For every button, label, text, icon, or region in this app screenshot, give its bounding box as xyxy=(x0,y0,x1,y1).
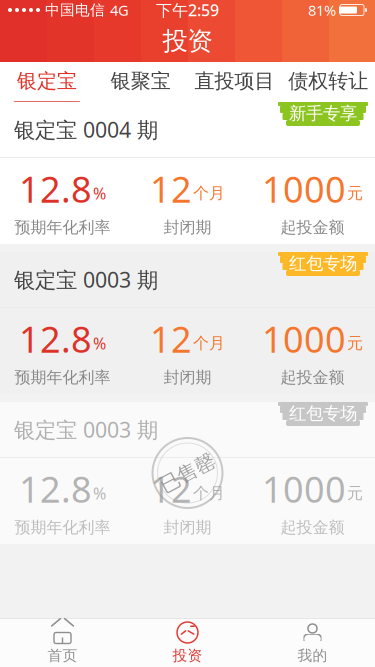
staticText: 预期年化利率 xyxy=(14,518,110,537)
staticText: 银定宝 0004 期 xyxy=(14,115,158,144)
staticText: 元 xyxy=(347,333,363,353)
staticText: 元 xyxy=(347,483,363,503)
staticText: 81% xyxy=(308,0,336,20)
staticText: % xyxy=(93,482,106,504)
staticText: 元 xyxy=(347,183,363,203)
button[interactable]: 债权转让 xyxy=(281,62,375,102)
staticText: 个月 xyxy=(193,183,225,203)
staticText: % xyxy=(93,182,106,204)
button[interactable]: 银定宝 xyxy=(0,62,94,102)
staticText: 新手专享 xyxy=(289,103,357,124)
staticText: % xyxy=(93,332,106,354)
staticText: 个月 xyxy=(193,333,225,353)
staticText: 12 xyxy=(150,465,192,513)
staticText: 12.8 xyxy=(19,465,92,513)
staticText: 封闭期 xyxy=(163,368,211,387)
button[interactable]: 直投项目 xyxy=(187,62,281,102)
staticText: 个月 xyxy=(193,483,225,503)
staticText: 起投金额 xyxy=(280,518,344,537)
staticText: 直投项目 xyxy=(194,69,274,93)
staticText: 银聚宝 xyxy=(111,69,171,93)
staticText: 1000 xyxy=(262,165,346,213)
staticText: 红包专场 xyxy=(289,253,357,274)
staticText: 预期年化利率 xyxy=(14,368,110,387)
staticText: 红包专场 xyxy=(289,403,357,424)
button[interactable]: 银定宝 0003 期 xyxy=(0,252,375,394)
staticText: 1000 xyxy=(262,315,346,363)
staticText: 投资 xyxy=(172,646,202,664)
staticText: 起投金额 xyxy=(280,368,344,387)
staticText: 12 xyxy=(150,165,192,213)
staticText: 12.8 xyxy=(19,165,92,213)
staticText: 已售罄 xyxy=(157,461,217,485)
staticText: 银定宝 0003 期 xyxy=(14,415,158,444)
staticText: 债权转让 xyxy=(288,69,368,93)
staticText: 4G xyxy=(110,0,129,20)
staticText: 首页 xyxy=(47,646,77,664)
staticText: 12 xyxy=(150,315,192,363)
staticText: 银定宝 xyxy=(17,69,77,93)
staticText: 预期年化利率 xyxy=(14,218,110,237)
staticText: 起投金额 xyxy=(280,218,344,237)
staticText: 银定宝 0003 期 xyxy=(14,265,158,294)
button[interactable]: 首页 xyxy=(0,619,125,667)
staticText: 1000 xyxy=(262,465,346,513)
staticText: 12.8 xyxy=(19,315,92,363)
button[interactable]: 我的 xyxy=(250,619,375,667)
button[interactable]: 银聚宝 xyxy=(94,62,188,102)
staticText: 封闭期 xyxy=(163,518,211,537)
staticText: 中国电信 xyxy=(45,1,105,19)
staticText: 下午2:59 xyxy=(156,0,219,21)
button[interactable]: 银定宝 0003 期 xyxy=(0,402,375,544)
staticText: 我的 xyxy=(297,646,327,664)
staticText: 封闭期 xyxy=(163,218,211,237)
button[interactable]: 投资 xyxy=(125,619,250,667)
button[interactable]: 银定宝 0004 期 xyxy=(0,102,375,244)
staticText: 投资 xyxy=(162,25,212,56)
